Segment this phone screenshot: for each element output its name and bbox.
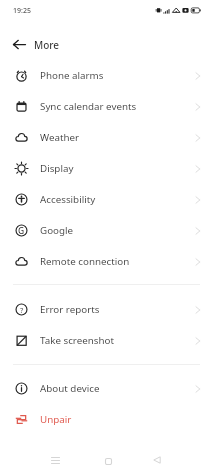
staticText: Display <box>40 162 203 175</box>
staticText: Google <box>40 224 203 237</box>
staticText: More <box>34 38 60 52</box>
button[interactable]: ? <box>0 294 215 325</box>
button[interactable]: Remote connection <box>0 246 215 277</box>
staticText: About device <box>40 382 203 395</box>
button[interactable]: Recent apps <box>43 448 67 472</box>
button[interactable]: Back <box>145 448 169 472</box>
button[interactable]: Weather <box>0 122 215 153</box>
staticText: Weather <box>40 131 203 144</box>
staticText: Unpair <box>40 413 199 426</box>
button[interactable]: Accessibility <box>0 184 215 215</box>
staticText: 19:25 <box>13 6 31 16</box>
staticText: G <box>18 225 25 237</box>
staticText: Phone alarms <box>40 69 203 82</box>
staticText: Sync calendar events <box>40 100 203 113</box>
button[interactable]: Back <box>6 31 32 57</box>
button[interactable]: Display <box>0 153 215 184</box>
button[interactable]: About device <box>0 373 215 404</box>
button[interactable]: Home <box>96 449 120 473</box>
staticText: Error reports <box>40 303 203 316</box>
staticText: Take screenshot <box>40 334 203 347</box>
staticText: ? <box>20 305 24 315</box>
button[interactable]: Take screenshot <box>0 325 215 356</box>
staticText: Remote connection <box>40 255 203 268</box>
button[interactable]: Phone alarms <box>0 60 215 91</box>
button[interactable]: G <box>0 215 215 246</box>
staticText: Accessibility <box>40 193 203 206</box>
button[interactable]: Unpair <box>0 404 215 435</box>
button[interactable]: Sync calendar events <box>0 91 215 122</box>
